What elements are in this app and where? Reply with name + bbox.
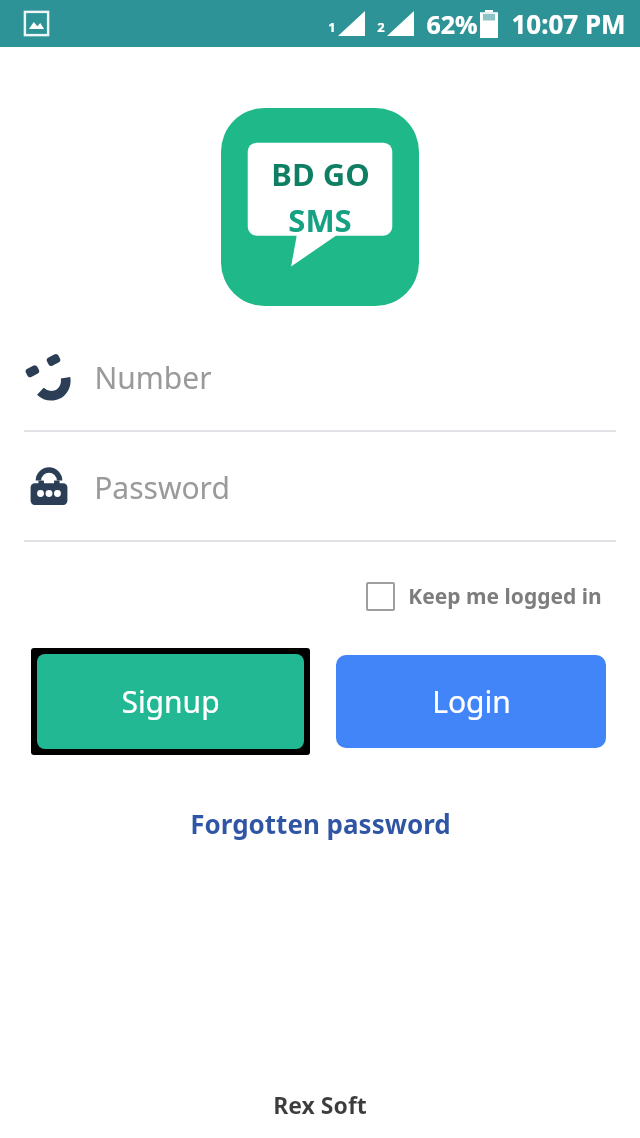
staticText: 10:07 PM: [511, 6, 626, 41]
staticText: 62%: [426, 7, 478, 41]
staticText: 2: [377, 18, 385, 36]
staticText: Keep me logged in: [408, 582, 602, 611]
staticText: Signup: [121, 681, 220, 722]
staticText: Number: [94, 357, 212, 398]
button[interactable]: Forgotten password: [178, 800, 463, 847]
staticText: Login: [432, 681, 511, 722]
button[interactable]: Password: [0, 458, 640, 542]
button[interactable]: Number: [0, 348, 640, 432]
button[interactable]: Signup: [31, 648, 310, 755]
staticText: BD GO: [271, 153, 370, 195]
staticText: SMS: [288, 199, 352, 241]
button[interactable]: Keep me logged in: [362, 576, 606, 617]
staticText: Password: [94, 467, 230, 508]
staticText: 1: [328, 18, 336, 36]
other: Screenshot: [23, 10, 50, 37]
staticText: Forgotten password: [190, 806, 451, 841]
button[interactable]: Login: [336, 655, 606, 748]
staticText: Rex Soft: [273, 1089, 367, 1120]
